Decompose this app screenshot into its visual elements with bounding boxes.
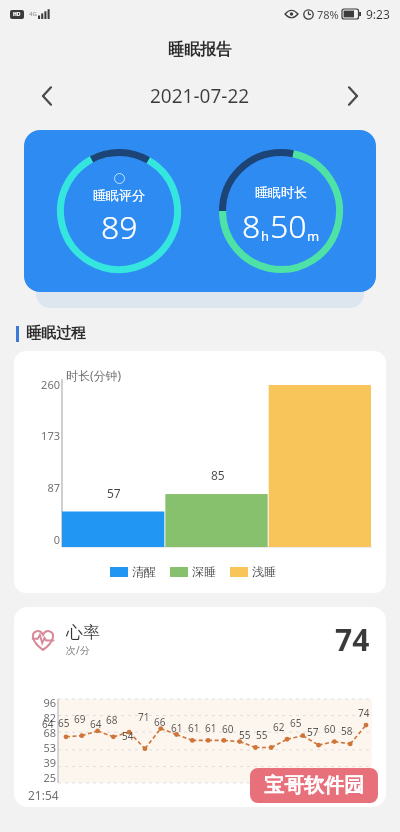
staticText: 浅睡 [252, 564, 276, 579]
staticText: 260 [26, 377, 60, 392]
staticText: 9:23 [366, 6, 390, 22]
button[interactable]: 睡眠评分 [24, 130, 376, 292]
staticText: 07:41 [341, 787, 372, 803]
staticText: 54 [122, 729, 134, 743]
staticText: 65 [58, 716, 70, 730]
staticText: h [261, 227, 270, 245]
staticText: 清醒 [132, 564, 156, 579]
staticText: 61 [188, 721, 200, 735]
staticText: 2021-07-22 [150, 83, 250, 109]
staticText: 64 [90, 717, 102, 731]
staticText: 71 [138, 710, 150, 724]
staticText: 57 [107, 485, 121, 501]
staticText: 78% [317, 7, 339, 22]
staticText: 53 [28, 740, 56, 755]
staticText: 39 [28, 755, 56, 770]
staticText: 66 [154, 715, 166, 729]
staticText: 60 [222, 722, 234, 736]
button[interactable]: Previous day [30, 79, 64, 113]
button[interactable]: 时长(分钟) [14, 351, 386, 593]
staticText: 74 [358, 706, 370, 720]
staticText: 96 [28, 695, 56, 710]
staticText: 睡眠过程 [26, 324, 86, 343]
staticText: 57 [307, 725, 319, 739]
staticText: 睡眠时长 [255, 184, 307, 200]
staticText: 睡眠报告 [168, 40, 232, 60]
staticText: 69 [74, 712, 86, 726]
staticText: 65 [290, 716, 302, 730]
staticText: 55 [239, 728, 251, 742]
staticText: 68 [106, 713, 118, 727]
staticText: 55 [256, 728, 268, 742]
staticText: 61 [171, 721, 183, 735]
staticText: 心率 [66, 622, 100, 643]
staticText: 74 [335, 619, 370, 660]
staticText: 87 [26, 480, 60, 495]
staticText: 173 [26, 428, 60, 443]
staticText: 25 [28, 770, 56, 783]
staticText: HD [13, 11, 21, 18]
staticText: 68 [28, 725, 56, 740]
staticText: 64 [42, 717, 54, 731]
other: Heart rate [30, 627, 56, 653]
staticText: 4G [29, 10, 37, 18]
staticText: 62 [273, 720, 285, 734]
staticText: 85 [211, 467, 225, 483]
button[interactable]: Next day [336, 79, 370, 113]
staticText: 50 [270, 204, 307, 248]
staticText: 89 [101, 205, 138, 249]
staticText: 次/分 [66, 643, 90, 657]
staticText: 8 [242, 204, 261, 248]
button[interactable]: Heart rate [14, 607, 386, 807]
staticText: 82 [28, 710, 56, 725]
staticText: m [307, 227, 320, 245]
staticText: 时长(分钟) [66, 367, 122, 383]
staticText: 60 [324, 722, 336, 736]
staticText: 21:54 [28, 787, 59, 803]
staticText: 61 [205, 721, 217, 735]
staticText: 睡眠评分 [93, 187, 145, 203]
staticText: 深睡 [192, 564, 216, 579]
staticText: 58 [341, 724, 353, 738]
staticText: 0 [26, 532, 60, 547]
staticText: 宝哥软件园 [264, 773, 364, 798]
